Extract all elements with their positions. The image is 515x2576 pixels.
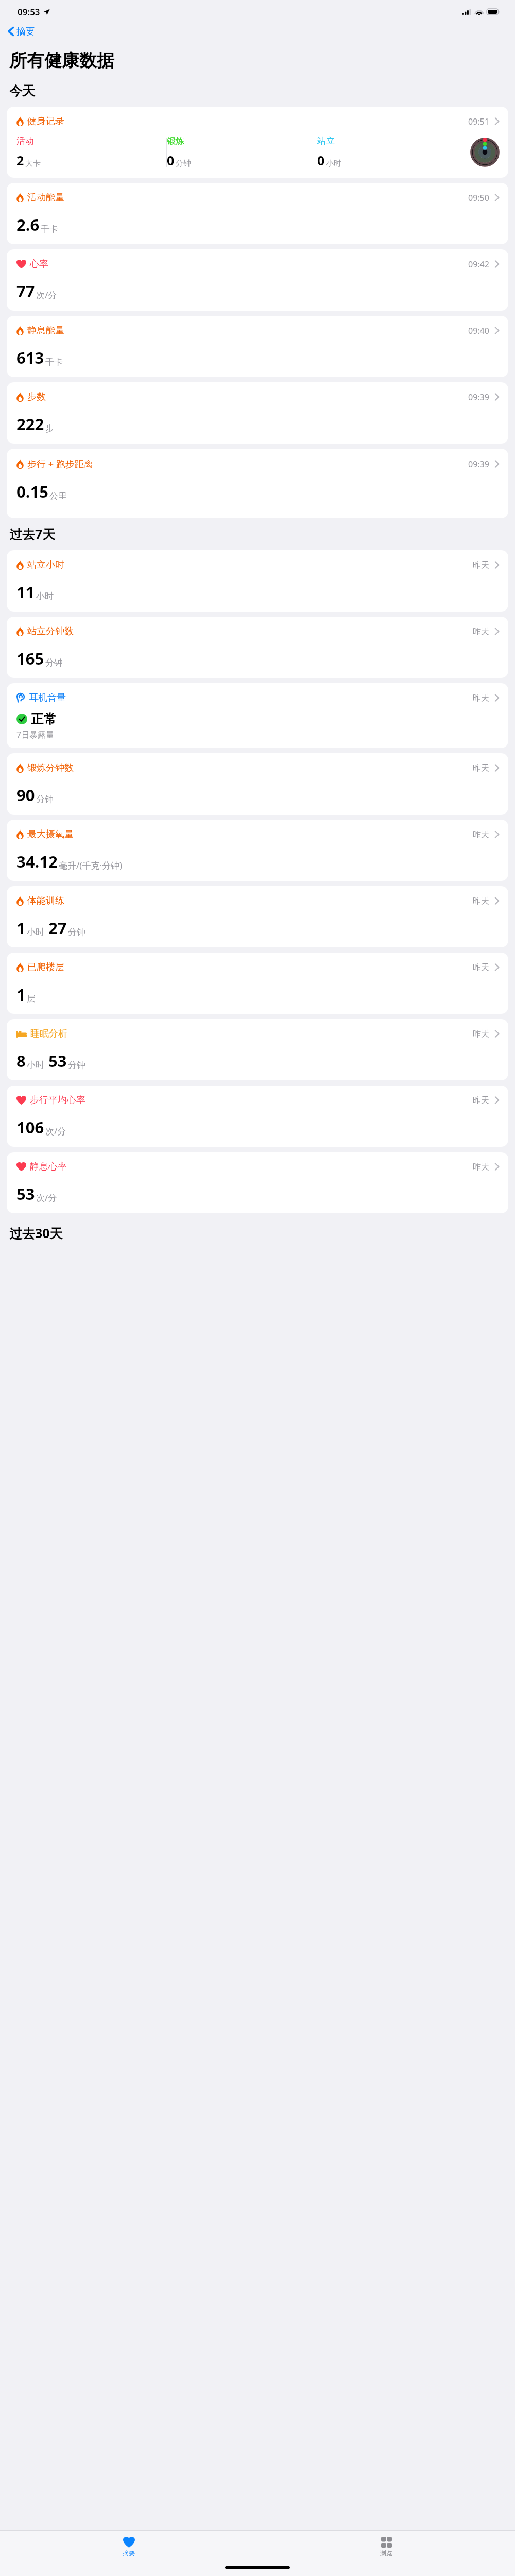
staticText: 53	[48, 1050, 67, 1072]
staticText: 昨天	[473, 693, 489, 703]
staticText: 小时	[326, 159, 341, 168]
staticText: 活动能量	[27, 192, 64, 204]
staticText: 小时	[27, 927, 44, 938]
staticText: 昨天	[473, 560, 489, 570]
staticText: 次/分	[45, 1125, 66, 1137]
button[interactable]: 心率	[7, 249, 508, 311]
button[interactable]: 体能训练	[7, 886, 508, 947]
staticText: 106	[16, 1116, 44, 1138]
staticText: 分钟	[68, 1060, 85, 1071]
staticText: 1	[16, 917, 26, 939]
staticText: 09:53	[18, 6, 40, 18]
button[interactable]: 耳机音量	[7, 683, 508, 748]
staticText: 77	[16, 280, 35, 302]
button[interactable]: 浏览	[257, 2531, 515, 2563]
button[interactable]: 摘要	[7, 24, 35, 39]
button[interactable]: 最大摄氧量	[7, 820, 508, 881]
staticText: 已爬楼层	[27, 961, 64, 973]
staticText: 53	[16, 1183, 35, 1205]
staticText: 09:39	[468, 392, 489, 403]
staticText: 千卡	[45, 357, 63, 367]
staticText: 1	[16, 984, 26, 1005]
staticText: 昨天	[473, 829, 489, 840]
button[interactable]: 步数	[7, 382, 508, 444]
staticText: 千卡	[41, 224, 58, 234]
staticText: 7日暴露量	[16, 729, 55, 740]
staticText: 体能训练	[27, 895, 64, 907]
staticText: 昨天	[473, 763, 489, 773]
button[interactable]: 睡眠分析	[7, 1019, 508, 1080]
staticText: 摘要	[123, 2549, 135, 2557]
staticText: 锻炼分钟数	[27, 762, 74, 774]
staticText: 浏览	[380, 2549, 392, 2557]
button[interactable]: 步行 + 跑步距离	[7, 449, 508, 518]
staticText: 步行平均心率	[30, 1094, 85, 1106]
staticText: 8	[16, 1050, 26, 1072]
button[interactable]: 站立分钟数	[7, 617, 508, 678]
staticText: 大卡	[25, 159, 41, 168]
staticText: 步	[45, 423, 54, 434]
staticText: 613	[16, 347, 44, 368]
button[interactable]: 已爬楼层	[7, 953, 508, 1014]
staticText: 09:50	[468, 192, 489, 204]
staticText: 09:51	[468, 116, 489, 127]
staticText: 分钟	[176, 159, 191, 168]
staticText: 公里	[49, 490, 67, 501]
staticText: 分钟	[68, 927, 85, 938]
staticText: 耳机音量	[29, 692, 66, 704]
staticText: 静息能量	[27, 325, 64, 336]
staticText: 昨天	[473, 896, 489, 906]
staticText: 11	[16, 581, 35, 603]
staticText: 27	[48, 917, 67, 939]
staticText: 过去30天	[9, 1224, 63, 1242]
button[interactable]: 活动能量	[7, 183, 508, 244]
staticText: 昨天	[473, 626, 489, 637]
button[interactable]: 健身记录	[7, 107, 508, 178]
staticText: 步数	[27, 391, 46, 403]
staticText: 34.12	[16, 851, 58, 872]
staticText: 锻炼	[167, 135, 184, 146]
staticText: 2	[16, 151, 24, 169]
staticText: 昨天	[473, 1162, 489, 1172]
button[interactable]: 锻炼分钟数	[7, 753, 508, 815]
staticText: 正常	[31, 711, 57, 727]
staticText: 小时	[27, 1060, 44, 1071]
staticText: 活动	[16, 135, 34, 146]
staticText: 90	[16, 784, 35, 806]
staticText: 0	[167, 151, 175, 169]
staticText: 层	[27, 993, 36, 1004]
staticText: 站立小时	[27, 559, 64, 571]
staticText: 今天	[9, 83, 35, 99]
button[interactable]: 步行平均心率	[7, 1086, 508, 1147]
staticText: 摘要	[16, 26, 35, 38]
staticText: 心率	[30, 258, 48, 270]
staticText: 0	[317, 151, 325, 169]
staticText: 昨天	[473, 1095, 489, 1106]
staticText: 分钟	[45, 657, 63, 668]
button[interactable]: 站立小时	[7, 550, 508, 612]
staticText: 所有健康数据	[9, 49, 114, 72]
staticText: 小时	[36, 591, 54, 602]
staticText: 昨天	[473, 962, 489, 973]
staticText: 222	[16, 413, 44, 435]
staticText: 09:42	[468, 259, 489, 270]
staticText: 分钟	[36, 794, 54, 805]
staticText: 静息心率	[30, 1161, 67, 1173]
staticText: 次/分	[36, 289, 57, 301]
staticText: 步行 + 跑步距离	[27, 457, 93, 470]
staticText: 09:39	[468, 459, 489, 470]
staticText: 165	[16, 648, 44, 669]
staticText: 09:40	[468, 325, 489, 336]
staticText: 昨天	[473, 1029, 489, 1039]
button[interactable]: 静息能量	[7, 316, 508, 377]
button[interactable]: 静息心率	[7, 1152, 508, 1213]
staticText: 睡眠分析	[30, 1028, 67, 1040]
staticText: 站立	[317, 135, 335, 146]
staticText: 最大摄氧量	[27, 828, 74, 840]
staticText: 站立分钟数	[27, 625, 74, 637]
staticText: 过去7天	[9, 525, 56, 543]
staticText: 健身记录	[27, 115, 64, 127]
staticText: 次/分	[36, 1192, 57, 1204]
staticText: 毫升/(千克·分钟)	[59, 859, 123, 871]
button[interactable]: 摘要	[0, 2531, 257, 2563]
